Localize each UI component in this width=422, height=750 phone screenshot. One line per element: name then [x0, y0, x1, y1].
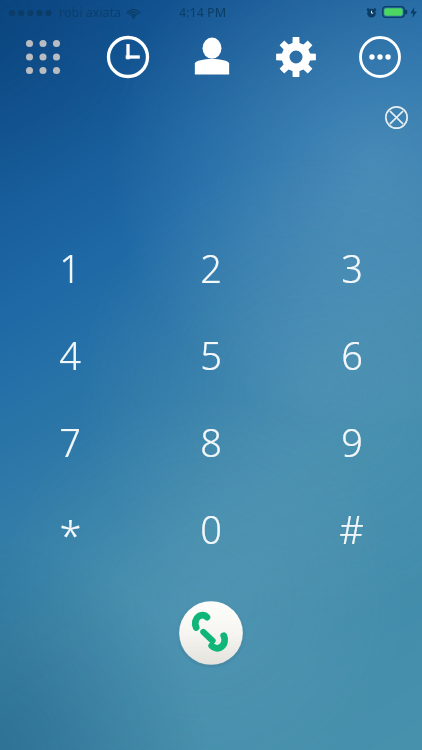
button[interactable]: Settings	[254, 24, 338, 90]
staticText: 2	[200, 242, 222, 294]
staticText: 0	[200, 503, 222, 555]
button[interactable]: Contacts	[170, 24, 254, 90]
staticText: 1	[59, 242, 81, 294]
staticText: 5	[200, 329, 222, 381]
button[interactable]: 9	[281, 398, 422, 485]
button[interactable]: More options	[338, 24, 422, 90]
button[interactable]: Recents	[85, 24, 170, 90]
staticText: 8	[200, 416, 222, 468]
staticText: 6	[341, 329, 363, 381]
staticText: 3	[341, 242, 363, 294]
button[interactable]: Call	[176, 598, 246, 668]
staticText: robi axiata	[59, 4, 122, 21]
staticText: 4	[59, 329, 81, 381]
button[interactable]: 0	[140, 485, 281, 572]
staticText: *	[59, 508, 82, 562]
button[interactable]: 8	[140, 398, 281, 485]
staticText: 7	[59, 416, 81, 468]
button[interactable]: 6	[281, 311, 422, 398]
button[interactable]: 5	[140, 311, 281, 398]
button[interactable]: Keypad	[0, 24, 85, 90]
staticText: 9	[341, 416, 363, 468]
button[interactable]: Close	[379, 100, 413, 134]
button[interactable]: 3	[281, 225, 422, 311]
button[interactable]: #	[281, 485, 422, 572]
button[interactable]: *	[0, 485, 140, 572]
button[interactable]: 1	[0, 225, 140, 311]
button[interactable]: 4	[0, 311, 140, 398]
staticText: #	[339, 503, 364, 555]
button[interactable]: 7	[0, 398, 140, 485]
staticText: 4:14 PM	[179, 4, 227, 21]
button[interactable]: 2	[140, 225, 281, 311]
